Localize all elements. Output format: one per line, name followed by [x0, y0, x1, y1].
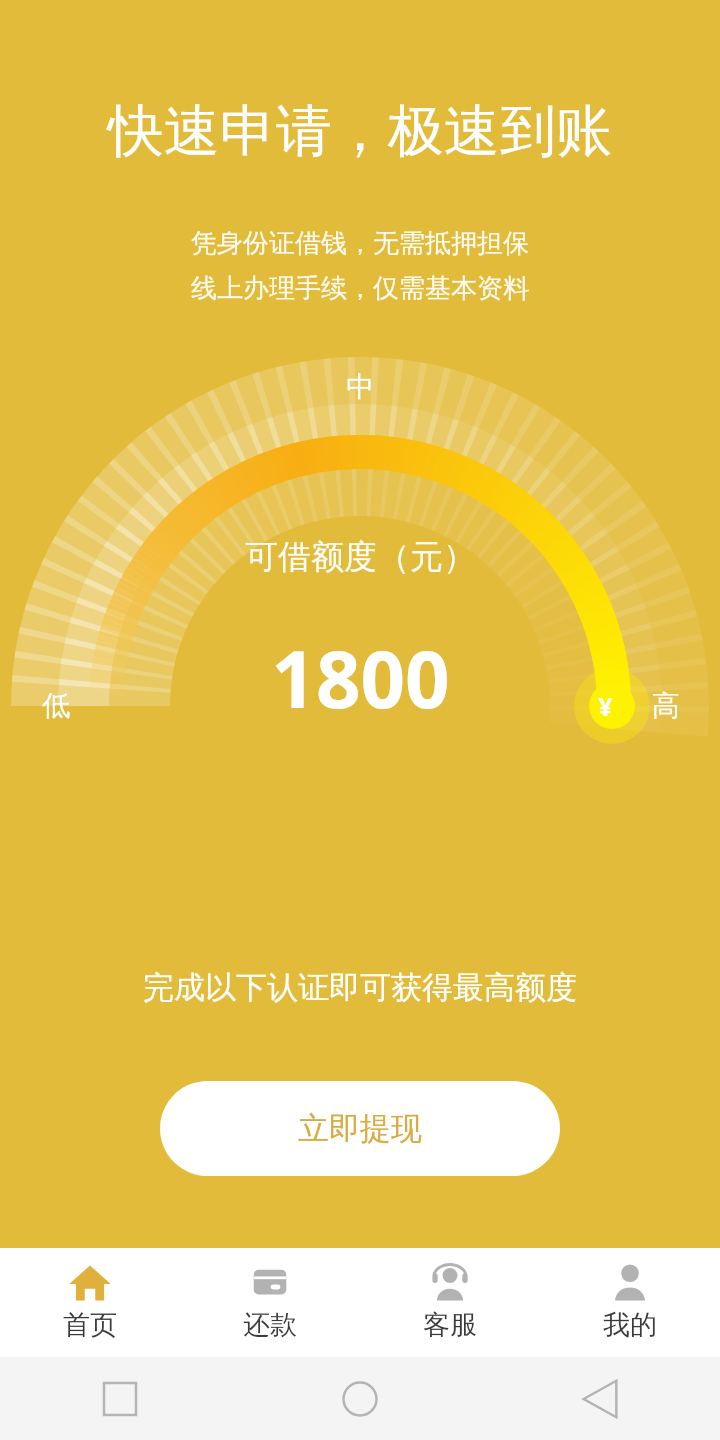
staticText: 低: [42, 688, 70, 723]
button[interactable]: Back: [480, 1357, 720, 1440]
staticText: ¥: [598, 689, 613, 723]
button[interactable]: 还款: [180, 1248, 360, 1342]
staticText: 客服: [423, 1308, 477, 1342]
staticText: 快速申请，极速到账: [108, 96, 612, 167]
button[interactable]: 客服: [360, 1248, 540, 1342]
staticText: 完成以下认证即可获得最高额度: [143, 968, 577, 1007]
staticText: 首页: [63, 1308, 117, 1342]
button[interactable]: Home: [240, 1357, 480, 1440]
staticText: 高: [652, 688, 680, 723]
button[interactable]: Recent apps: [0, 1357, 240, 1440]
staticText: 中: [346, 369, 374, 404]
staticText: 还款: [243, 1308, 297, 1342]
button[interactable]: 我的: [540, 1248, 720, 1342]
staticText: 立即提现: [298, 1109, 422, 1148]
staticText: 1800: [271, 625, 450, 731]
staticText: 凭身份证借钱，无需抵押担保: [191, 227, 529, 260]
staticText: 可借额度（元）: [245, 536, 476, 578]
button[interactable]: 首页: [0, 1248, 180, 1342]
staticText: 我的: [603, 1308, 657, 1342]
staticText: 线上办理手续，仅需基本资料: [191, 272, 529, 305]
button[interactable]: 立即提现: [160, 1081, 560, 1176]
